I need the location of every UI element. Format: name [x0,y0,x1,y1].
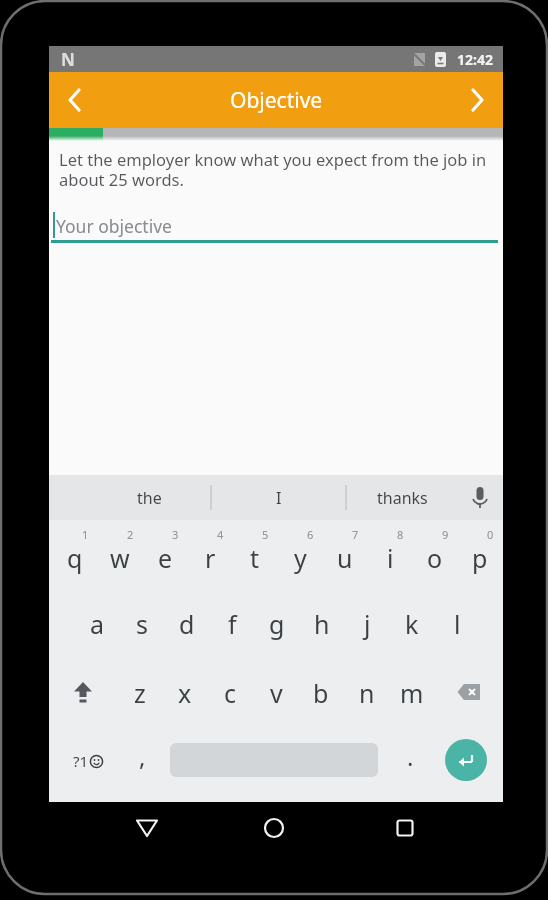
staticText: e [158,541,173,575]
button[interactable]: d [165,600,209,648]
button[interactable]: o [413,534,457,582]
button[interactable]: ?1 [61,740,113,782]
staticText: Let the employer know what you expect fr… [59,148,487,191]
staticText: b [313,676,329,710]
button[interactable]: g [255,600,299,648]
button[interactable] [131,812,163,844]
button[interactable]: I [211,475,346,520]
staticText: a [90,607,105,641]
staticText: 1 [82,527,89,542]
button[interactable]: t [233,534,277,582]
staticText: n [359,676,375,710]
button[interactable]: n [345,669,389,717]
staticText: i [387,541,394,575]
staticText: o [427,541,443,575]
staticText: 12:42 [457,50,493,69]
staticText: . [407,740,414,773]
staticText: Objective [230,86,323,115]
button[interactable]: a [75,600,119,648]
staticText: 7 [352,527,359,542]
staticText: z [134,676,146,710]
button[interactable]: b [299,669,343,717]
button[interactable]: r [188,534,232,582]
staticText: the [137,487,162,509]
button[interactable]: q [53,534,97,582]
button[interactable] [258,812,290,844]
button[interactable]: m [390,669,434,717]
staticText: N [61,48,75,71]
staticText: 0 [487,527,494,542]
staticText: 9 [442,527,449,542]
button[interactable]: p [458,534,502,582]
staticText: x [178,676,192,710]
button[interactable]: w [98,534,142,582]
button[interactable]: x [163,669,207,717]
staticText: j [364,607,371,641]
button[interactable]: . [388,732,432,780]
staticText: ?1 [73,751,89,771]
staticText: , [139,740,146,773]
staticText: 2 [127,527,134,542]
button[interactable] [445,672,493,714]
staticText: y [294,541,307,575]
staticText: d [179,607,195,641]
staticText: m [400,676,424,710]
staticText: w [110,541,130,575]
button[interactable]: the [87,475,211,520]
staticText: t [250,541,260,575]
staticText: v [270,676,283,710]
staticText: h [314,607,330,641]
button[interactable]: e [143,534,187,582]
button[interactable]: f [210,600,254,648]
button[interactable]: l [435,600,479,648]
button[interactable]: i [368,534,412,582]
button[interactable]: y [278,534,322,582]
button[interactable]: thanks [346,475,458,520]
staticText: k [405,607,419,641]
staticText: l [454,607,461,641]
button[interactable]: j [345,600,389,648]
button[interactable]: c [208,669,252,717]
button[interactable] [389,812,421,844]
button[interactable] [49,72,101,128]
staticText: 4 [217,527,224,542]
button[interactable]: , [120,732,164,780]
staticText: 3 [172,527,179,542]
button[interactable] [445,739,487,781]
staticText: q [67,541,83,575]
button[interactable]: Your objective [51,205,500,245]
staticText: g [269,607,285,641]
staticText: 8 [397,527,404,542]
button[interactable] [59,672,107,714]
button[interactable]: z [118,669,162,717]
staticText: Your objective [56,214,172,238]
button[interactable] [458,475,503,520]
staticText: 6 [307,527,314,542]
button[interactable]: h [300,600,344,648]
staticText: I [276,487,282,509]
button[interactable]: v [254,669,298,717]
staticText: f [228,607,237,641]
staticText: s [136,607,148,641]
button[interactable]: u [323,534,367,582]
staticText: 5 [262,527,269,542]
staticText: c [224,676,237,710]
staticText: u [337,541,353,575]
staticText: thanks [377,487,428,509]
staticText: p [472,541,488,575]
button[interactable]: s [120,600,164,648]
button[interactable]: k [390,600,434,648]
button[interactable] [451,72,503,128]
staticText: r [205,541,216,575]
